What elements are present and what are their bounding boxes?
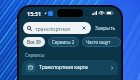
- staticText: Все 39: [27, 39, 41, 45]
- staticText: Транспортная карта: [39, 64, 110, 71]
- button[interactable]: транспортная: [23, 22, 91, 34]
- button[interactable]: Транспортная карта: [22, 60, 118, 75]
- button[interactable]: Все 39: [23, 37, 45, 47]
- button[interactable]: Часто ищут сейчас 15: [82, 37, 121, 47]
- staticText: транспортная: [35, 25, 81, 32]
- staticText: Сервисы: [25, 52, 45, 58]
- button[interactable]: Закрыть: [94, 23, 117, 34]
- button[interactable]: Очистить: [81, 25, 87, 31]
- staticText: Часто ищут сейчас 15: [86, 39, 117, 45]
- staticText: Сервисы 2: [52, 39, 75, 45]
- staticText: Закрыть: [95, 25, 116, 32]
- button[interactable]: Сервисы 2: [48, 37, 79, 47]
- staticText: 15:31: [27, 10, 42, 17]
